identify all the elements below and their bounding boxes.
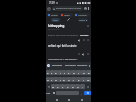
staticText: f	[60, 78, 61, 81]
staticText: n	[77, 85, 79, 88]
button[interactable]: f	[58, 77, 62, 82]
button[interactable]: l	[81, 77, 86, 82]
button[interactable]: j	[71, 77, 76, 82]
staticText: e	[55, 71, 57, 74]
staticText: z	[51, 71, 53, 74]
button[interactable]: Backspace	[85, 84, 91, 89]
button[interactable]: x	[55, 84, 60, 89]
button[interactable]: Vidéos	[61, 13, 72, 17]
staticText: ?123	[46, 92, 51, 95]
staticText: kidnappings	[65, 64, 76, 67]
staticText: h	[68, 78, 70, 81]
staticText: o	[83, 71, 85, 74]
button[interactable]: g	[62, 77, 66, 82]
button[interactable]: u	[71, 70, 76, 75]
button[interactable]: Listen	[78, 39, 81, 42]
staticText: b	[72, 85, 74, 88]
button[interactable]: Essayer avec cette orthographe :	[48, 33, 89, 37]
button[interactable]: m	[86, 77, 91, 82]
button[interactable]: n	[75, 84, 80, 89]
button[interactable]: google.com/search?q=kidn	[53, 6, 82, 11]
staticText: d	[55, 78, 57, 81]
staticText: Essayer avec cette orthographe :	[48, 34, 79, 37]
button[interactable]: b	[70, 84, 75, 89]
button[interactable]: Actualités	[75, 13, 89, 17]
button[interactable]: w	[51, 84, 55, 89]
staticText: w	[52, 85, 54, 88]
button[interactable]: i	[76, 70, 81, 75]
button[interactable]: p	[86, 70, 91, 75]
button[interactable]: Images	[48, 13, 58, 17]
button[interactable]: k	[76, 77, 81, 82]
staticText: Actualités	[78, 14, 87, 17]
staticText: .	[81, 92, 82, 95]
staticText: j	[73, 78, 74, 81]
button[interactable]: Home	[66, 97, 71, 102]
button[interactable]: kidnappings	[64, 62, 76, 69]
staticText: s	[51, 78, 53, 81]
staticText: Dictionnaire	[48, 28, 60, 31]
staticText: y	[68, 71, 70, 74]
button[interactable]: a	[46, 70, 50, 75]
staticText: 5	[85, 8, 87, 10]
button[interactable]: s	[50, 77, 54, 82]
button[interactable]: o	[81, 70, 86, 75]
button[interactable]: e	[54, 70, 58, 75]
button[interactable]: q	[46, 77, 50, 82]
staticText: Images	[51, 14, 58, 17]
button[interactable]: '	[80, 84, 85, 89]
button[interactable]: Google	[47, 64, 50, 67]
staticText: kidnappeur	[77, 64, 88, 67]
button[interactable]: Tabs	[84, 7, 87, 10]
button[interactable]: Outils	[79, 18, 87, 22]
staticText: kidnapping	[52, 64, 63, 67]
staticText: q	[47, 78, 49, 81]
staticText: t	[64, 71, 65, 74]
staticText: G	[48, 64, 50, 67]
button[interactable]: ?123	[46, 91, 51, 95]
staticText: Vidéos	[64, 14, 70, 17]
staticText: Outils	[79, 19, 85, 22]
button[interactable]: z	[50, 70, 54, 75]
staticText: google.com/search?q=kidn	[56, 7, 82, 10]
staticText: a	[47, 71, 49, 74]
staticText: kidnapping	[48, 24, 65, 28]
button[interactable]: Edit search	[67, 18, 70, 21]
button[interactable]: d	[54, 77, 58, 82]
button[interactable]: r	[58, 70, 62, 75]
staticText: Tous	[53, 19, 58, 22]
button[interactable]: Recents	[79, 97, 84, 102]
button[interactable]: h	[66, 77, 71, 82]
button[interactable]: Tous	[53, 18, 58, 22]
staticText: Traductions de « kidnapping »	[48, 58, 78, 61]
button[interactable]: v	[65, 84, 70, 89]
staticText: m	[87, 78, 90, 81]
button[interactable]: More options	[87, 7, 90, 10]
button[interactable]: Account	[47, 7, 51, 11]
staticText: k	[78, 78, 80, 81]
button[interactable]: .	[79, 91, 84, 95]
button[interactable]: kidnapping	[51, 62, 64, 69]
button[interactable]: y	[66, 70, 71, 75]
staticText: c	[62, 85, 64, 88]
staticText: x	[57, 85, 59, 88]
button[interactable]: Search	[84, 91, 91, 95]
staticText: kidnapping	[80, 34, 89, 37]
staticText: l	[83, 78, 84, 81]
staticText: 7:39	[49, 1, 55, 5]
button[interactable]: c	[60, 84, 65, 89]
button[interactable]: Shift	[46, 84, 51, 89]
staticText: p	[88, 71, 90, 74]
button[interactable]: Back	[54, 97, 59, 102]
button[interactable]: Emoji	[51, 91, 56, 95]
button[interactable]: More suggestions	[88, 65, 90, 67]
button[interactable]: Listen	[82, 53, 85, 56]
button[interactable]: kidnappeur	[76, 62, 88, 69]
button[interactable]: t	[62, 70, 66, 75]
